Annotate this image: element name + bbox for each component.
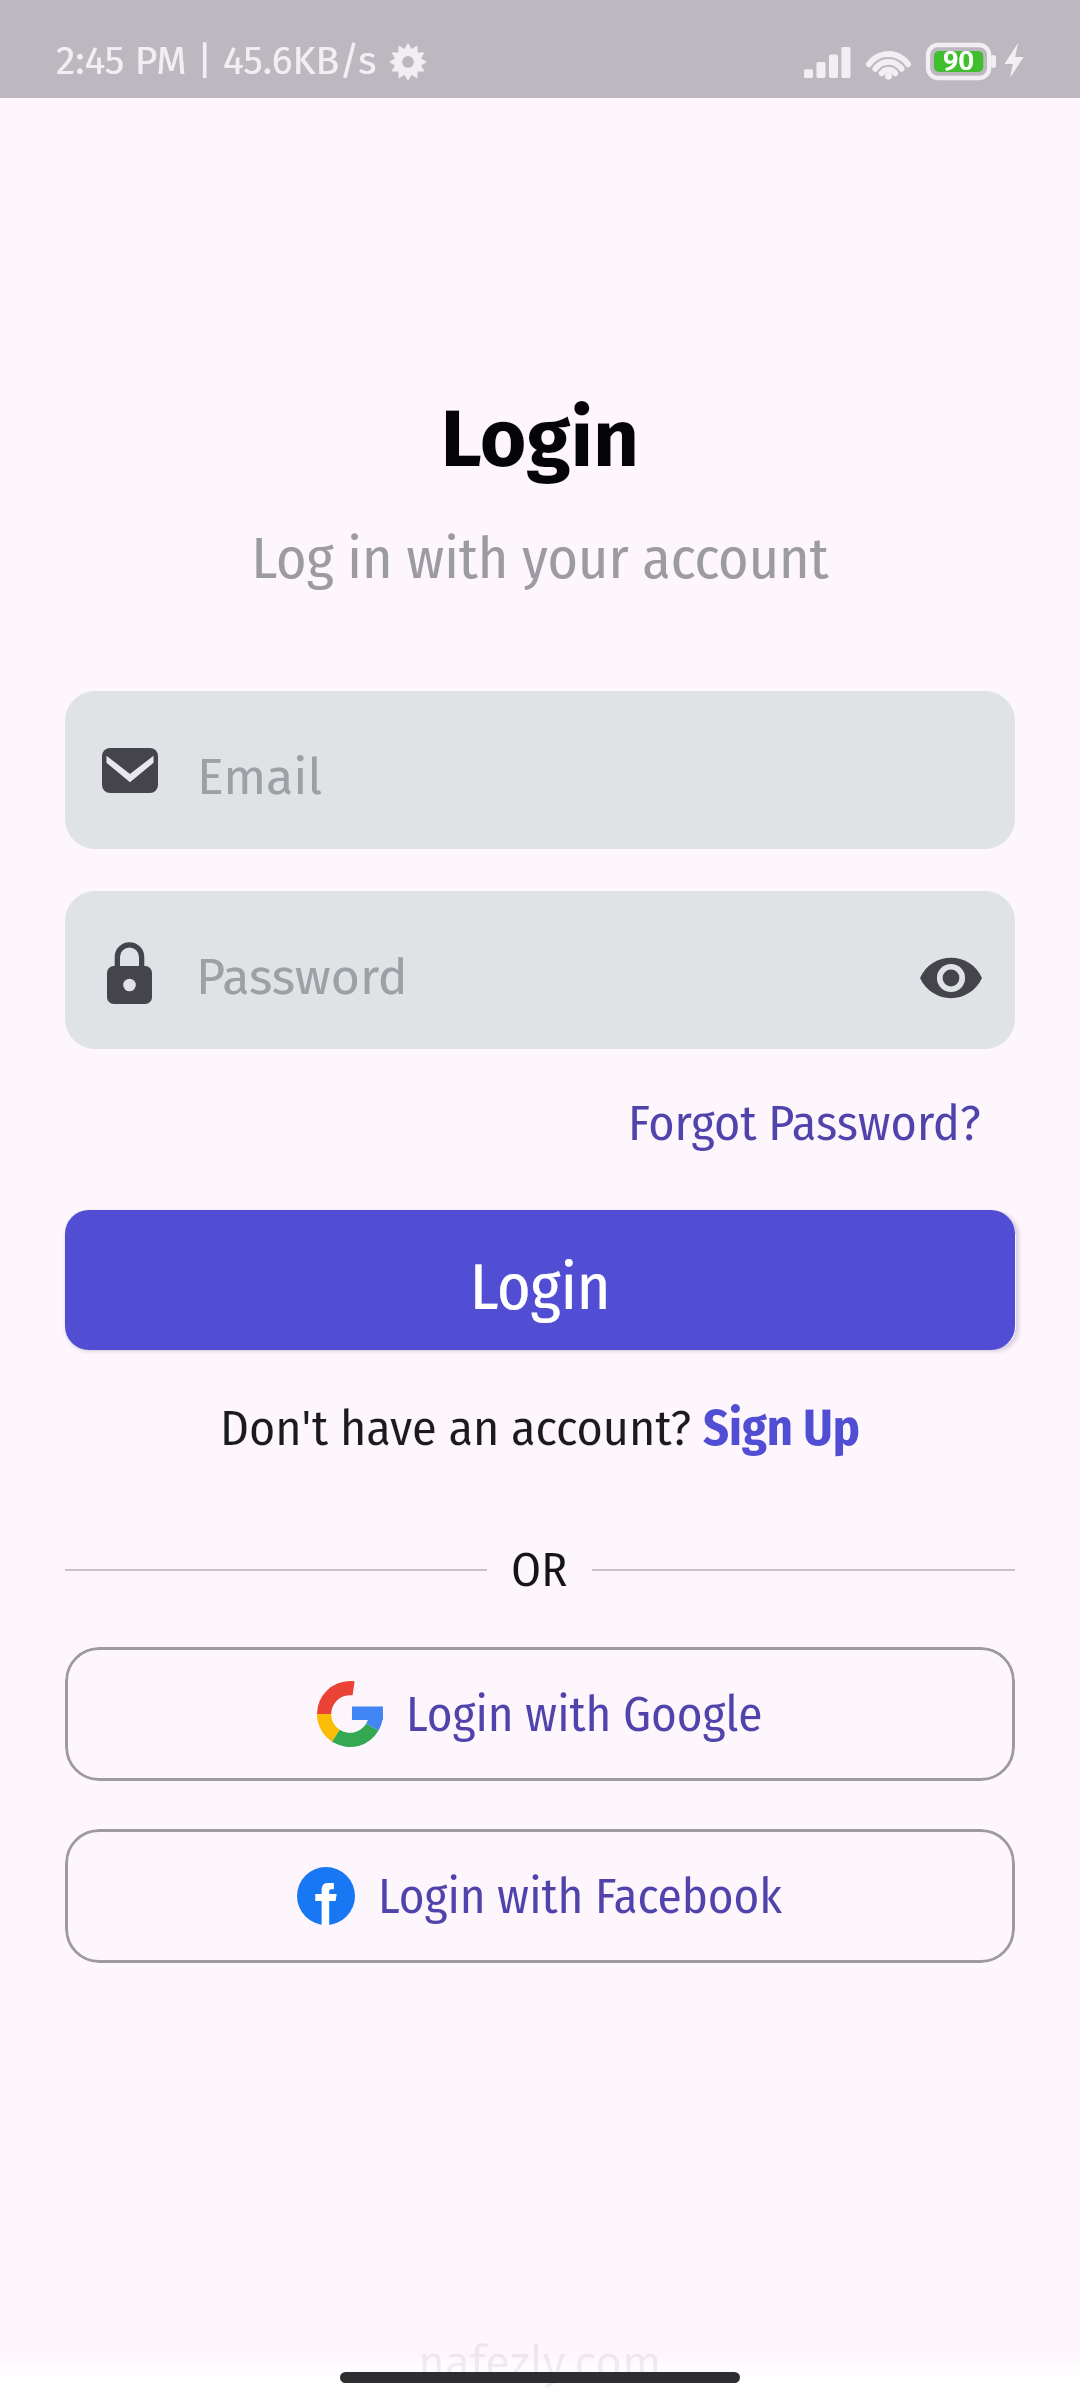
staticText: nafezly.com (418, 2335, 662, 2390)
staticText: Login (470, 1249, 611, 1326)
staticText: OR (511, 1541, 568, 1599)
button[interactable]: Login (65, 1210, 1015, 1350)
button[interactable]: Password (65, 891, 1015, 1049)
staticText: Login with Google (406, 1685, 763, 1744)
staticText: 90 (943, 44, 975, 78)
staticText: Log in with your account (0, 524, 1080, 594)
staticText: Login with Facebook (378, 1867, 783, 1926)
staticText: Password (196, 947, 901, 1007)
staticText: Login (0, 391, 1080, 487)
button[interactable]: Login with Facebook (65, 1829, 1015, 1963)
staticText: 2:45 PM | 45.6KB/s (56, 38, 377, 85)
button[interactable]: Show password (901, 920, 1001, 1020)
button[interactable]: Forgot Password? (628, 1093, 981, 1153)
staticText: Email (197, 747, 323, 807)
button[interactable]: Email (65, 691, 1015, 849)
button[interactable]: Login with Google (65, 1647, 1015, 1781)
button[interactable]: Don't have an account? Sign Up (220, 1398, 860, 1458)
